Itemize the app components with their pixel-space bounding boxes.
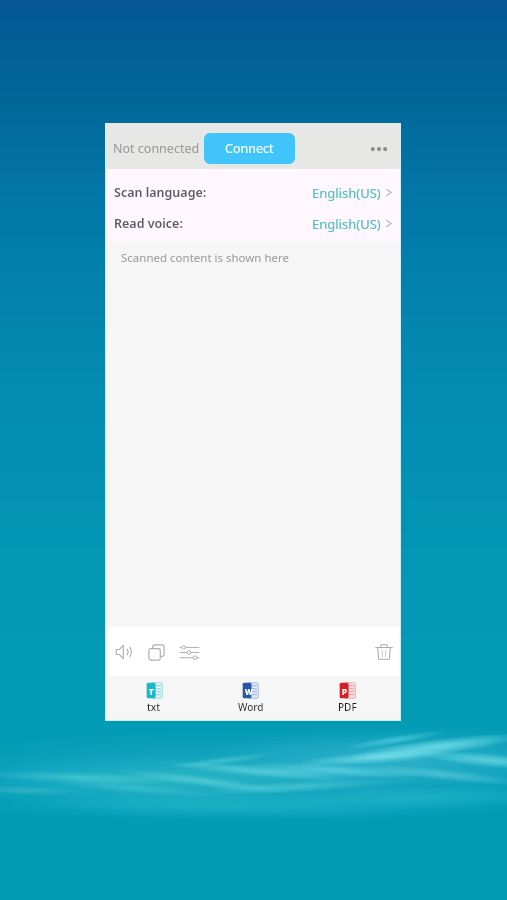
button[interactable]: Delete [367, 632, 400, 672]
staticText: W [245, 686, 253, 697]
button[interactable]: Adjust settings [173, 632, 206, 672]
button[interactable]: Copy [140, 632, 173, 672]
staticText: English(US) [312, 215, 381, 233]
staticText: Scanned content is shown here [121, 250, 290, 266]
staticText: Scan language: [114, 184, 207, 201]
staticText: PDF [338, 700, 357, 714]
button[interactable]: P [299, 682, 396, 714]
button[interactable]: Speak [107, 632, 140, 672]
button[interactable]: More options [360, 129, 394, 163]
staticText: P [342, 686, 347, 697]
staticText: English(US) [312, 184, 381, 202]
button[interactable]: Connect [204, 133, 295, 164]
staticText: T [149, 686, 154, 697]
staticText: Word [238, 700, 264, 714]
button[interactable]: Scan language: [106, 177, 400, 208]
button[interactable]: T [106, 682, 202, 714]
staticText: Connect [225, 140, 274, 157]
staticText: Read voice: [114, 215, 183, 232]
staticText: txt [147, 700, 161, 714]
button[interactable]: W [202, 682, 299, 714]
button[interactable]: Read voice: [106, 208, 400, 239]
staticText: Not connected [113, 140, 200, 157]
